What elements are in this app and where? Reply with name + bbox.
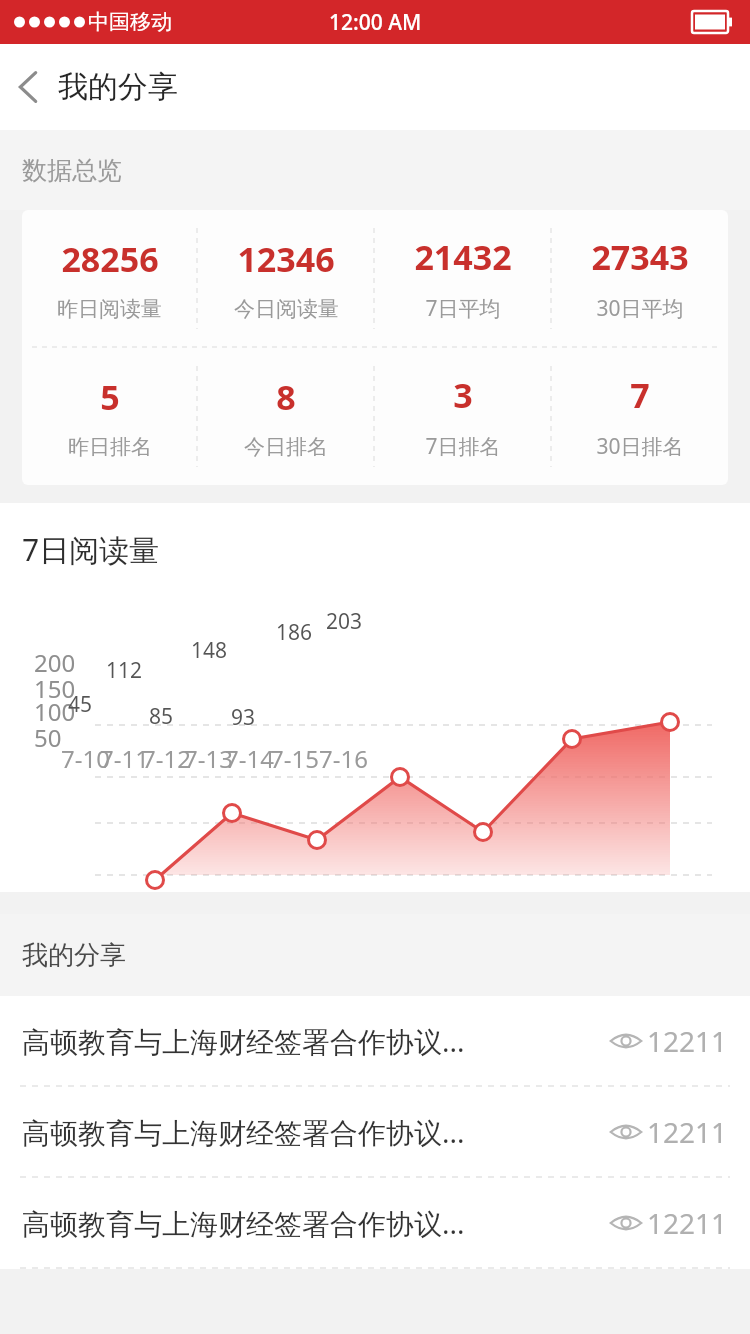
staticText: 今日阅读量 bbox=[234, 296, 339, 322]
staticText: 7-16 bbox=[319, 742, 368, 775]
staticText: 12211 bbox=[647, 1204, 728, 1242]
staticText: 7-10 bbox=[61, 742, 110, 775]
button[interactable]: 高顿教育与上海财经签署合作协议... bbox=[0, 1087, 750, 1177]
button[interactable]: Back bbox=[0, 59, 52, 115]
staticText: 7-13 bbox=[184, 742, 233, 775]
staticText: 7-11 bbox=[100, 742, 149, 775]
staticText: 8 bbox=[276, 374, 296, 420]
staticText: 30日平均 bbox=[596, 294, 684, 323]
staticText: 数据总览 bbox=[22, 155, 122, 186]
staticText: 112 bbox=[106, 656, 143, 685]
staticText: 高顿教育与上海财经签署合作协议... bbox=[22, 1022, 609, 1060]
staticText: 7-12 bbox=[142, 742, 191, 775]
staticText: 高顿教育与上海财经签署合作协议... bbox=[22, 1204, 609, 1242]
staticText: 12346 bbox=[237, 236, 335, 282]
button[interactable]: 27343 bbox=[552, 210, 728, 347]
button[interactable]: 3 bbox=[375, 348, 551, 485]
staticText: 45 bbox=[68, 690, 93, 719]
button[interactable]: 12346 bbox=[198, 210, 374, 347]
staticText: 100 bbox=[34, 695, 76, 728]
staticText: 12211 bbox=[647, 1113, 728, 1151]
staticText: 27343 bbox=[591, 234, 689, 280]
button[interactable]: 8 bbox=[198, 348, 374, 485]
staticText: 30日排名 bbox=[596, 432, 684, 461]
staticText: 我的分享 bbox=[58, 68, 178, 106]
staticText: 21432 bbox=[414, 234, 512, 280]
staticText: 7-14 bbox=[225, 742, 274, 775]
button[interactable]: 高顿教育与上海财经签署合作协议... bbox=[0, 996, 750, 1086]
staticText: 50 bbox=[34, 721, 62, 754]
staticText: 7日平均 bbox=[425, 294, 501, 323]
staticText: 我的分享 bbox=[22, 939, 126, 972]
staticText: 186 bbox=[276, 618, 313, 647]
staticText: 203 bbox=[326, 607, 363, 636]
staticText: 昨日排名 bbox=[68, 434, 152, 460]
button[interactable]: 5 bbox=[22, 348, 197, 485]
staticText: 150 bbox=[34, 672, 76, 705]
staticText: 高顿教育与上海财经签署合作协议... bbox=[22, 1113, 609, 1151]
staticText: 7日阅读量 bbox=[22, 529, 160, 570]
staticText: 7日排名 bbox=[425, 432, 501, 461]
staticText: 昨日阅读量 bbox=[57, 296, 162, 322]
staticText: 12211 bbox=[647, 1022, 728, 1060]
staticText: 93 bbox=[231, 703, 256, 732]
button[interactable]: 高顿教育与上海财经签署合作协议... bbox=[0, 1178, 750, 1268]
staticText: 7 bbox=[630, 372, 650, 418]
staticText: 12:00 AM bbox=[329, 8, 422, 37]
staticText: 今日排名 bbox=[244, 434, 328, 460]
staticText: 5 bbox=[100, 374, 120, 420]
staticText: 3 bbox=[453, 372, 473, 418]
staticText: 7-15 bbox=[270, 742, 319, 775]
button[interactable]: 21432 bbox=[375, 210, 551, 347]
staticText: 200 bbox=[34, 646, 76, 679]
button[interactable]: 28256 bbox=[22, 210, 197, 347]
staticText: 85 bbox=[149, 702, 174, 731]
staticText: 中国移动 bbox=[88, 9, 172, 35]
staticText: 28256 bbox=[61, 236, 159, 282]
button[interactable]: 7 bbox=[552, 348, 728, 485]
staticText: 148 bbox=[191, 636, 228, 665]
